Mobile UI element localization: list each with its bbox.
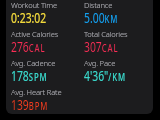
button[interactable]: Avg. Cadence	[6, 58, 79, 87]
staticText: 307CAL	[84, 37, 119, 56]
staticText: Avg. Pace	[84, 57, 115, 68]
staticText: Distance	[84, 0, 112, 10]
button[interactable]: Avg. Heart Rate	[6, 87, 79, 114]
staticText: 276CAL	[11, 37, 46, 56]
staticText: 0:23:02	[11, 8, 46, 27]
staticText: Workout Time	[11, 0, 57, 10]
button[interactable]: Distance	[79, 0, 153, 29]
staticText: Active Calories	[11, 28, 58, 39]
staticText: 4'36"/KM	[84, 66, 126, 85]
button[interactable]: Total Calories	[79, 29, 153, 58]
staticText: 5.00KM	[84, 8, 119, 27]
staticText: 139BPM	[11, 95, 49, 114]
staticText: 178SPM	[11, 66, 48, 85]
staticText: Avg. Heart Rate	[11, 86, 62, 97]
button[interactable]: Avg. Pace	[79, 58, 153, 87]
staticText: Avg. Cadence	[11, 57, 56, 68]
button[interactable]: Active Calories	[6, 29, 79, 58]
staticText: Total Calories	[84, 28, 128, 39]
button[interactable]: Workout Time	[6, 0, 79, 29]
